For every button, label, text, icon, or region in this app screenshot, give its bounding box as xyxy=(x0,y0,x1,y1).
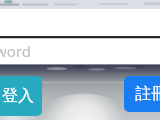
staticText: word xyxy=(0,41,31,61)
staticText: 註冊 xyxy=(135,84,160,104)
button[interactable] xyxy=(0,25,160,39)
staticText: 登入 xyxy=(2,86,34,106)
button[interactable]: word xyxy=(0,40,160,64)
button[interactable]: 註冊 xyxy=(124,76,160,112)
button[interactable]: 登入 xyxy=(0,76,42,116)
